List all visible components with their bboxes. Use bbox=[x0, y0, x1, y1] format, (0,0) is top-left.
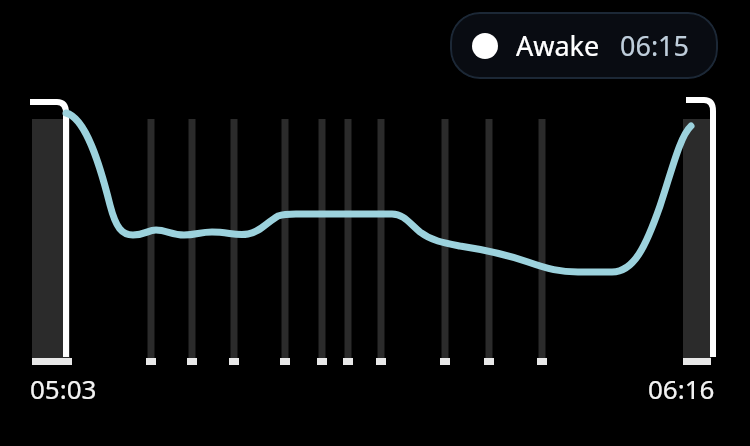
staticText: Awake bbox=[516, 27, 600, 64]
staticText: 06:15 bbox=[620, 27, 690, 64]
staticText: 05:03 bbox=[30, 371, 97, 406]
button[interactable]: Awake sleep stage bbox=[450, 12, 718, 79]
staticText: 06:16 bbox=[648, 371, 715, 406]
other: Awake sleep stage bbox=[472, 33, 498, 59]
